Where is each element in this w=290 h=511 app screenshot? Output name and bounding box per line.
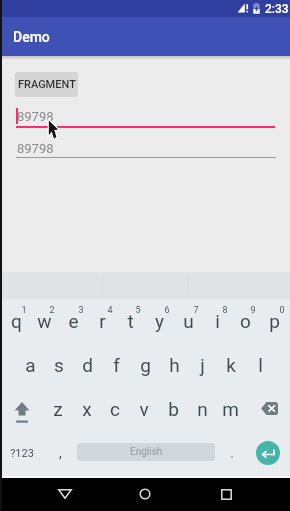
button[interactable] xyxy=(87,299,116,344)
staticText: 1 xyxy=(21,305,27,316)
staticText: v xyxy=(139,398,149,420)
staticText: o xyxy=(240,310,251,332)
staticText: n xyxy=(197,398,208,420)
staticText: FRAGMENT xyxy=(18,78,76,91)
button[interactable] xyxy=(102,344,131,389)
button[interactable]: English xyxy=(77,443,215,461)
staticText: a xyxy=(25,354,36,376)
staticText: ?123 xyxy=(10,447,34,460)
button[interactable] xyxy=(16,344,45,389)
staticText: 9 xyxy=(250,305,256,316)
staticText: f xyxy=(113,354,120,376)
button[interactable]: Backspace xyxy=(248,388,290,433)
staticText: h xyxy=(169,354,180,376)
button[interactable] xyxy=(116,299,145,344)
button[interactable] xyxy=(231,299,260,344)
staticText: d xyxy=(82,354,93,376)
button[interactable] xyxy=(1,299,30,344)
button[interactable] xyxy=(188,344,217,389)
staticText: i xyxy=(215,310,220,332)
button[interactable] xyxy=(173,299,202,344)
button[interactable] xyxy=(202,299,231,344)
staticText: English xyxy=(130,446,163,458)
button[interactable] xyxy=(46,433,74,478)
button[interactable]: FRAGMENT xyxy=(15,72,78,97)
button[interactable] xyxy=(101,388,130,433)
staticText: j xyxy=(200,354,205,376)
staticText: u xyxy=(183,310,194,332)
staticText: 0 xyxy=(279,305,285,316)
staticText: 3 xyxy=(78,305,84,316)
button[interactable] xyxy=(30,299,59,344)
button[interactable]: Enter xyxy=(256,441,280,465)
staticText: q xyxy=(11,310,22,332)
button[interactable]: 89798 xyxy=(16,106,275,127)
staticText: r xyxy=(99,310,106,332)
staticText: 6 xyxy=(164,305,170,316)
staticText: , xyxy=(59,445,62,461)
button[interactable] xyxy=(245,344,274,389)
button[interactable] xyxy=(145,299,174,344)
staticText: l xyxy=(258,354,263,376)
staticText: 5 xyxy=(135,305,141,316)
button[interactable] xyxy=(130,388,159,433)
staticText: m xyxy=(222,398,239,420)
staticText: w xyxy=(37,310,52,332)
button[interactable] xyxy=(131,344,160,389)
staticText: 2 xyxy=(49,305,55,316)
button[interactable] xyxy=(217,344,246,389)
button[interactable] xyxy=(2,433,46,478)
button[interactable]: Recents xyxy=(221,489,232,500)
staticText: e xyxy=(68,310,79,332)
staticText: 2:33 xyxy=(265,2,289,16)
button[interactable] xyxy=(44,388,73,433)
staticText: b xyxy=(168,398,179,420)
button[interactable]: Home xyxy=(139,488,151,500)
staticText: p xyxy=(269,310,280,332)
button[interactable]: 89798 xyxy=(16,138,276,159)
button[interactable]: Back xyxy=(58,489,72,499)
staticText: z xyxy=(53,398,63,420)
staticText: g xyxy=(140,354,151,376)
staticText: 89798 xyxy=(17,141,54,156)
button[interactable] xyxy=(159,388,188,433)
staticText: 89798 xyxy=(17,109,54,124)
staticText: c xyxy=(110,398,120,420)
staticText: x xyxy=(82,398,92,420)
staticText: k xyxy=(226,354,236,376)
button[interactable] xyxy=(44,344,73,389)
staticText: 8 xyxy=(222,305,228,316)
staticText: y xyxy=(155,310,164,332)
button[interactable] xyxy=(159,344,188,389)
button[interactable] xyxy=(73,344,102,389)
staticText: . xyxy=(230,445,234,461)
staticText: 4 xyxy=(107,305,113,316)
button[interactable] xyxy=(216,388,245,433)
button[interactable] xyxy=(59,299,88,344)
staticText: s xyxy=(54,354,64,376)
button[interactable]: Shift xyxy=(2,388,44,433)
button[interactable] xyxy=(187,388,216,433)
button[interactable] xyxy=(218,433,246,478)
staticText: Demo xyxy=(13,29,50,45)
staticText: t xyxy=(127,310,134,332)
button[interactable] xyxy=(72,388,101,433)
button[interactable] xyxy=(260,299,289,344)
staticText: 7 xyxy=(193,305,199,316)
